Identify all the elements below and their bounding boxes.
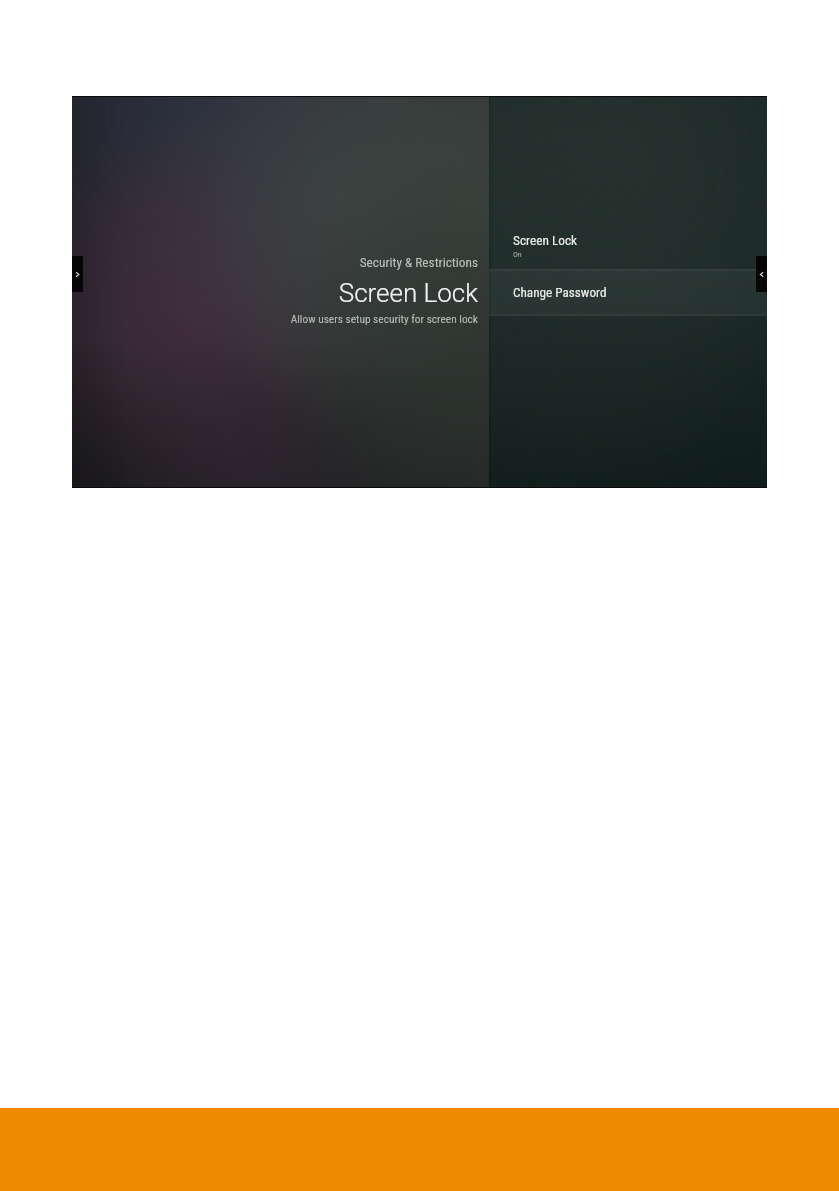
staticText: Screen Lock [189,278,478,308]
button[interactable]: Change Password [489,269,767,316]
button[interactable]: Previous image [756,256,767,292]
staticText: Allow users setup security for screen lo… [189,312,478,325]
staticText: Security & Restrictions [189,255,478,271]
button[interactable]: Next image [72,256,83,292]
staticText: Screen Lock [513,233,578,249]
staticText: Change Password [513,285,607,300]
button[interactable]: Screen Lock [489,233,767,269]
staticText: On [513,250,522,259]
